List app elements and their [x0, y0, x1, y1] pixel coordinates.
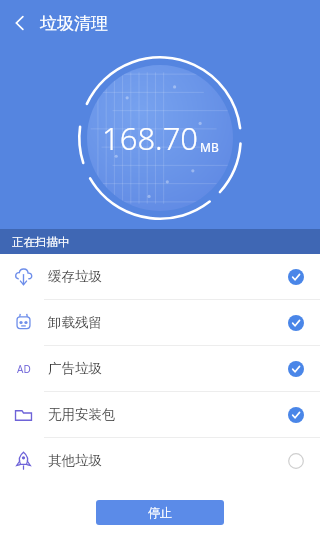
- button[interactable]: 缓存垃圾: [0, 254, 320, 299]
- staticText: 停止: [148, 505, 172, 520]
- staticText: 缓存垃圾: [48, 268, 102, 285]
- staticText: 无用安装包: [48, 406, 116, 423]
- button[interactable]: AD: [0, 346, 320, 391]
- staticText: 其他垃圾: [48, 452, 102, 469]
- button[interactable]: Back: [0, 0, 40, 46]
- button[interactable]: 其他垃圾: [0, 438, 320, 483]
- staticText: 卸载残留: [48, 314, 102, 331]
- staticText: AD: [17, 362, 31, 376]
- staticText: 垃圾清理: [40, 13, 108, 34]
- staticText: 广告垃圾: [48, 360, 102, 377]
- staticText: 正在扫描中: [12, 235, 70, 249]
- button[interactable]: 卸载残留: [0, 300, 320, 345]
- button[interactable]: 停止: [96, 500, 224, 525]
- staticText: 168.70: [102, 117, 199, 159]
- button[interactable]: 无用安装包: [0, 392, 320, 437]
- staticText: MB: [200, 139, 219, 155]
